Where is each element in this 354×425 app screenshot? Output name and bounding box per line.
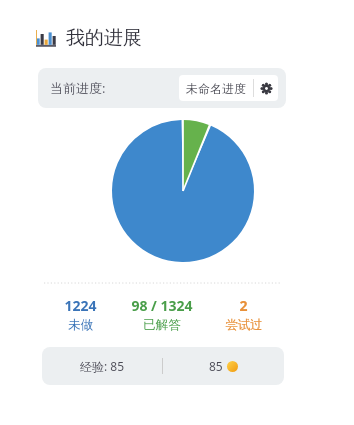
button[interactable]: Settings bbox=[254, 75, 278, 101]
staticText: 未做 bbox=[68, 317, 93, 333]
staticText: 98 / 1324 bbox=[131, 296, 193, 315]
staticText: 我的进展 bbox=[66, 26, 142, 50]
staticText: 当前进度: bbox=[50, 79, 106, 97]
staticText: 经验: 85 bbox=[80, 358, 125, 374]
button[interactable]: 1224 bbox=[44, 296, 116, 333]
staticText: 已解答 bbox=[143, 317, 181, 333]
staticText: 未命名进度 bbox=[186, 81, 246, 96]
button[interactable]: 未命名进度 bbox=[179, 75, 278, 101]
other: Progress chart bbox=[36, 28, 56, 48]
staticText: 1224 bbox=[64, 296, 97, 315]
staticText: 85 bbox=[209, 358, 223, 374]
button[interactable]: 2 bbox=[207, 296, 280, 333]
button[interactable]: 98 / 1324 bbox=[116, 296, 207, 333]
staticText: 尝试过 bbox=[225, 317, 263, 333]
staticText: 2 bbox=[239, 296, 248, 315]
